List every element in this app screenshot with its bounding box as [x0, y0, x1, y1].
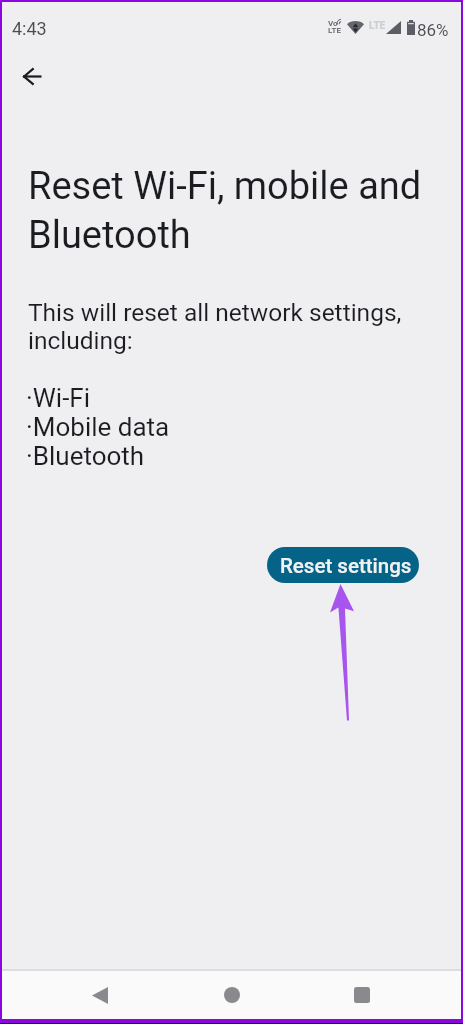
button[interactable]: Home: [206, 974, 258, 1016]
staticText: ·Wi-Fi ·Mobile data ·Bluetooth: [26, 383, 170, 471]
staticText: 86%: [417, 20, 449, 40]
staticText: LTE: [369, 20, 386, 32]
staticText: This will reset all network settings, in…: [28, 298, 431, 355]
button[interactable]: Back: [16, 60, 48, 92]
button[interactable]: Recent apps: [336, 974, 388, 1016]
staticText: Vo: [328, 19, 338, 28]
staticText: LTE: [328, 26, 341, 35]
staticText: Reset settings: [280, 554, 412, 578]
staticText: Reset Wi-Fi, mobile and Bluetooth: [28, 164, 441, 257]
staticText: 4:43: [12, 18, 47, 39]
button[interactable]: Back: [74, 974, 126, 1016]
button[interactable]: Reset settings: [267, 547, 419, 583]
